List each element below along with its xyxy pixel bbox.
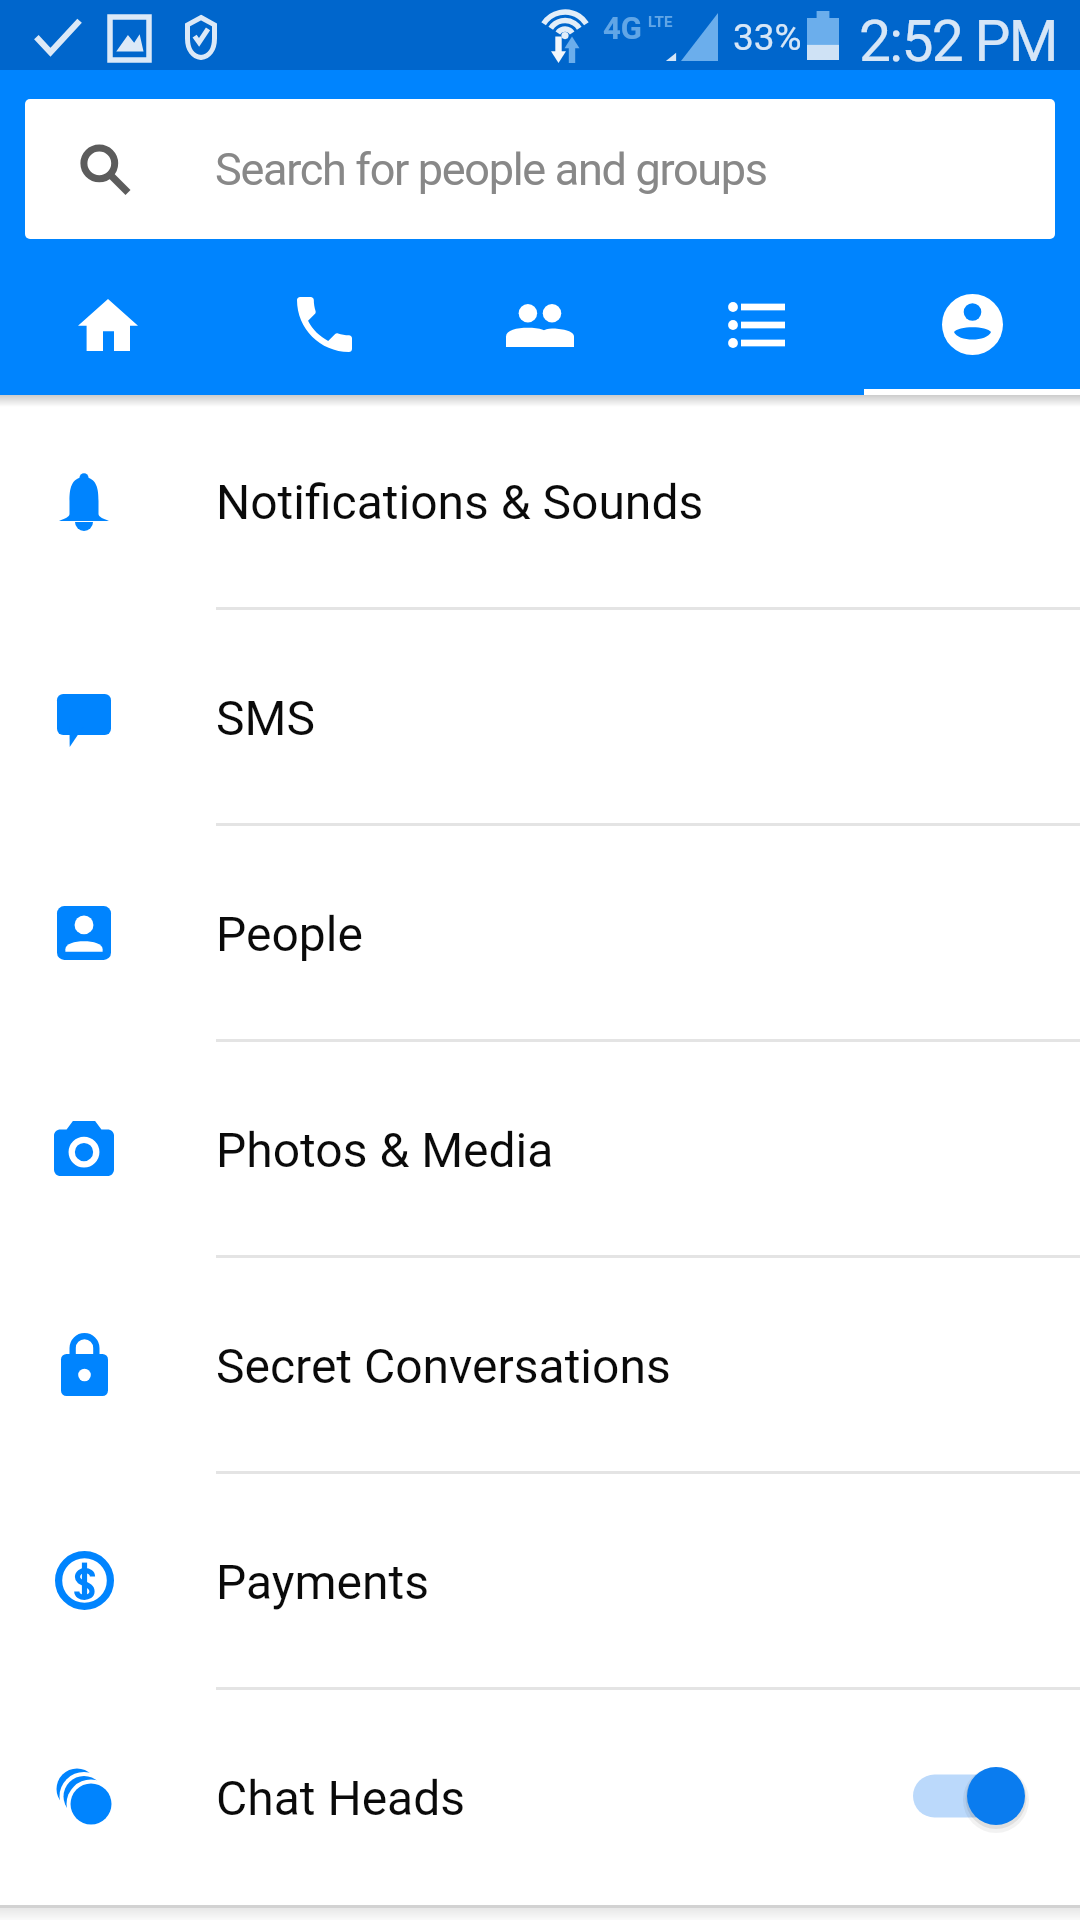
staticText: Secret Conversations [216,1338,671,1394]
button[interactable]: SMS [0,608,1080,824]
button[interactable]: Chat Heads toggle [913,1760,1025,1832]
staticText: Chat Heads [216,1770,466,1826]
staticText: Payments [216,1554,430,1610]
button[interactable]: Notifications & Sounds [0,392,1080,608]
button[interactable]: Calls [216,262,432,395]
button[interactable]: Message requests [648,262,864,395]
staticText: Photos & Media [216,1122,554,1178]
staticText: Notifications & Sounds [216,474,704,530]
button[interactable]: Secret Conversations [0,1256,1080,1472]
button[interactable]: Payments [0,1472,1080,1688]
button[interactable]: Photos & Media [0,1040,1080,1256]
staticText: LTE [648,13,673,31]
button[interactable]: Profile [864,262,1080,395]
staticText: 4G [603,10,642,46]
staticText: 2:52 PM [859,8,1057,75]
staticText: SMS [216,690,315,746]
button[interactable]: Chat Heads [0,1688,1080,1904]
staticText: People [216,906,363,962]
staticText: 33% [733,16,802,59]
button[interactable]: Home [0,262,216,395]
button[interactable]: People [432,262,648,395]
button[interactable]: Search for people and groups [25,99,1055,239]
staticText: Search for people and groups [215,143,767,196]
button[interactable]: People [0,824,1080,1040]
